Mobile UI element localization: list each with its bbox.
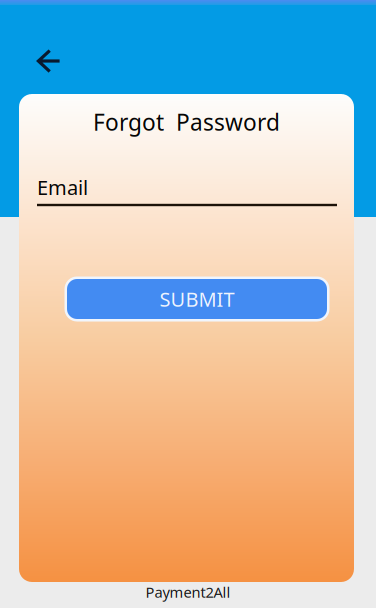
staticText: SUBMIT [159, 286, 234, 312]
button[interactable]: Back [25, 39, 73, 83]
button[interactable]: Email [37, 175, 337, 206]
staticText: Payment2All [145, 582, 230, 602]
staticText: Email [37, 174, 88, 200]
staticText: Forgot Password [93, 107, 280, 137]
button[interactable]: SUBMIT [64, 276, 329, 321]
